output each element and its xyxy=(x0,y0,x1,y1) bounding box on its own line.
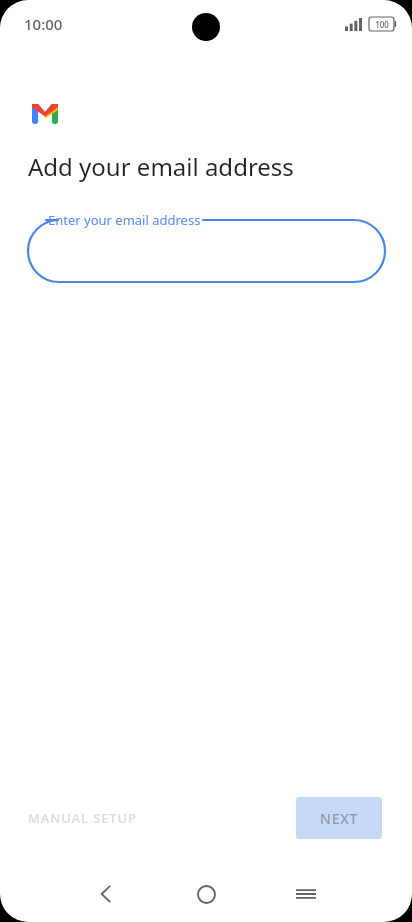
button[interactable]: Recent apps xyxy=(282,870,330,918)
button[interactable]: NEXT xyxy=(296,797,382,839)
button[interactable]: Back xyxy=(82,870,130,918)
staticText: Add your email address xyxy=(28,150,294,183)
staticText: NEXT xyxy=(320,809,359,828)
staticText: Enter your email address xyxy=(48,211,201,229)
button[interactable]: MANUAL SETUP xyxy=(16,799,149,837)
button[interactable]: Home xyxy=(182,870,230,918)
staticText: 100 xyxy=(375,19,389,30)
staticText: 10:00 xyxy=(24,14,63,34)
staticText: MANUAL SETUP xyxy=(28,809,137,827)
button[interactable]: Enter your email address xyxy=(28,208,385,282)
